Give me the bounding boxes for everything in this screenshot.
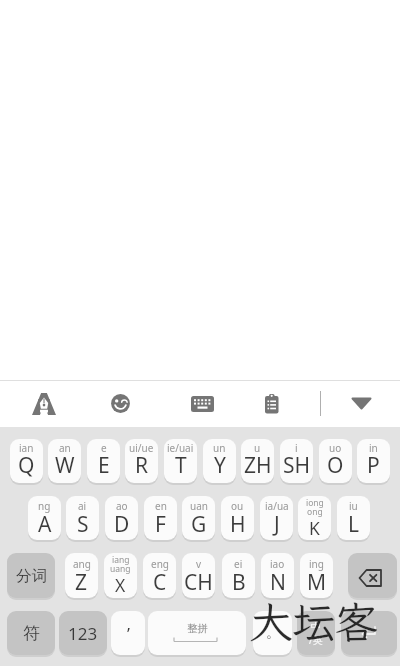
staticText: 。: [266, 624, 280, 642]
staticText: /英: [309, 633, 323, 647]
button[interactable]: i: [280, 439, 313, 483]
staticText: F: [155, 510, 166, 539]
staticText: an: [59, 441, 71, 455]
button[interactable]: [254, 385, 291, 422]
button[interactable]: [26, 384, 62, 424]
staticText: un: [213, 441, 226, 455]
staticText: Z: [75, 568, 88, 597]
button[interactable]: ian: [10, 439, 43, 483]
button[interactable]: iang: [104, 553, 137, 598]
button[interactable]: en: [144, 496, 177, 540]
button[interactable]: 中: [297, 611, 335, 655]
staticText: ai: [78, 499, 87, 513]
button[interactable]: un: [203, 439, 236, 483]
button[interactable]: ing: [300, 553, 333, 598]
staticText: ng: [38, 499, 51, 513]
staticText: 123: [68, 622, 98, 645]
staticText: u: [254, 441, 261, 455]
button[interactable]: [184, 387, 221, 421]
staticText: uang: [110, 563, 131, 575]
staticText: J: [274, 510, 280, 539]
staticText: ang: [73, 557, 91, 571]
staticText: ing: [309, 557, 324, 571]
staticText: K: [309, 516, 320, 540]
button[interactable]: ang: [65, 553, 98, 598]
button[interactable]: ou: [221, 496, 254, 540]
button[interactable]: 。: [253, 611, 292, 655]
button[interactable]: uan: [182, 496, 215, 540]
button[interactable]: eng: [143, 553, 176, 598]
staticText: C: [153, 568, 167, 597]
button[interactable]: [348, 553, 397, 598]
staticText: O: [327, 451, 344, 480]
staticText: L: [348, 510, 360, 539]
button[interactable]: in: [357, 439, 390, 483]
staticText: E: [98, 451, 110, 480]
button[interactable]: ia/ua: [260, 496, 293, 540]
staticText: eng: [151, 557, 169, 571]
staticText: v: [196, 557, 202, 571]
staticText: Y: [214, 451, 226, 480]
staticText: 整拼: [187, 622, 208, 635]
staticText: iao: [270, 557, 285, 571]
staticText: en: [155, 499, 167, 513]
button[interactable]: e: [87, 439, 120, 483]
staticText: in: [369, 441, 378, 455]
button[interactable]: [343, 387, 379, 420]
staticText: M: [307, 568, 327, 597]
button[interactable]: ao: [105, 496, 138, 540]
staticText: iu: [349, 499, 358, 513]
button[interactable]: 符: [7, 611, 55, 655]
staticText: 中: [311, 620, 321, 633]
button[interactable]: ng: [28, 496, 61, 540]
staticText: SH: [283, 451, 311, 480]
button[interactable]: [341, 611, 397, 655]
staticText: 大坛客: [249, 593, 377, 651]
button[interactable]: uo: [319, 439, 352, 483]
staticText: R: [135, 451, 149, 480]
staticText: A: [38, 510, 52, 539]
staticText: W: [55, 451, 75, 480]
staticText: ong: [307, 506, 323, 518]
staticText: uan: [190, 499, 208, 513]
staticText: 符: [23, 623, 40, 644]
staticText: H: [230, 510, 246, 539]
staticText: i: [295, 441, 298, 455]
staticText: X: [115, 573, 126, 597]
button[interactable]: ai: [66, 496, 99, 540]
staticText: ie/uai: [167, 441, 194, 455]
staticText: ou: [231, 499, 244, 513]
staticText: iong: [306, 497, 324, 509]
staticText: ian: [19, 441, 34, 455]
button[interactable]: ’: [111, 611, 145, 655]
staticText: ’: [127, 622, 130, 645]
staticText: T: [175, 451, 187, 480]
button[interactable]: iong: [298, 496, 331, 540]
button[interactable]: an: [48, 439, 81, 483]
button[interactable]: u: [241, 439, 274, 483]
staticText: ia/ua: [265, 499, 289, 513]
button[interactable]: ei: [222, 553, 255, 598]
staticText: Q: [18, 451, 35, 480]
staticText: D: [114, 510, 130, 539]
staticText: ao: [116, 499, 128, 513]
button[interactable]: 整拼: [148, 611, 246, 655]
staticText: 分词: [16, 566, 47, 586]
staticText: P: [367, 451, 380, 480]
button[interactable]: iu: [337, 496, 370, 540]
button[interactable]: v: [182, 553, 215, 598]
button[interactable]: iao: [261, 553, 294, 598]
staticText: N: [270, 568, 286, 597]
staticText: CH: [184, 568, 213, 597]
staticText: e: [101, 441, 107, 455]
button[interactable]: 分词: [7, 553, 55, 598]
staticText: ZH: [244, 451, 272, 480]
button[interactable]: 123: [59, 611, 107, 655]
staticText: S: [77, 510, 89, 539]
button[interactable]: ui/ue: [125, 439, 158, 483]
staticText: uo: [329, 441, 342, 455]
staticText: B: [232, 568, 246, 597]
button[interactable]: ie/uai: [164, 439, 197, 483]
button[interactable]: [102, 385, 139, 422]
staticText: ei: [234, 557, 243, 571]
